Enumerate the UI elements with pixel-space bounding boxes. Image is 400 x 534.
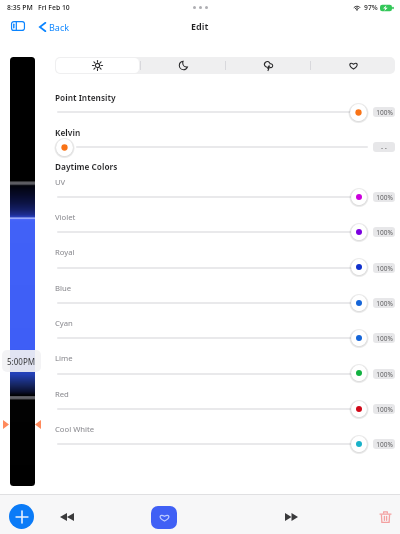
button[interactable]: Blue value [373,298,395,308]
button[interactable]: Storm [227,58,309,73]
button[interactable]: Delete [380,511,391,523]
staticText: 100% [376,405,393,414]
button[interactable]: Cool White slider [349,434,369,454]
staticText: Cyan [55,318,73,328]
button[interactable]: Daytime [56,58,139,73]
staticText: 100% [376,228,393,237]
staticText: 100% [376,334,393,343]
staticText: 100% [376,440,393,449]
staticText: Daytime Colors [55,161,118,172]
button[interactable]: Kelvin value [373,142,395,152]
staticText: 97% [364,3,378,12]
button[interactable]: Toggle sidebar [8,16,28,36]
button[interactable]: UV slider [349,187,369,207]
button[interactable]: Timeline [10,57,35,486]
button[interactable]: Fast forward [285,513,298,521]
staticText: Red [55,389,69,399]
button[interactable]: Point Intensity value [373,107,395,117]
staticText: 100% [376,370,393,379]
staticText: Violet [55,212,76,222]
staticText: Blue [55,283,72,293]
button[interactable]: Lime value [373,369,395,379]
staticText: 5:00PM [7,356,36,367]
button[interactable]: Point Intensity slider [348,102,369,123]
button[interactable]: Favorite [151,506,177,529]
button[interactable]: Night [142,58,224,73]
button[interactable]: Favorites [312,58,394,73]
staticText: Back [49,21,70,33]
staticText: Point Intensity [55,92,116,103]
button[interactable]: Violet value [373,227,395,237]
staticText: Royal [55,247,75,257]
button[interactable]: Rewind [60,513,74,521]
staticText: 100% [376,108,393,117]
button[interactable]: Cool White value [373,439,395,449]
staticText: Fri Feb 10 [38,3,70,12]
staticText: Cool White [55,424,95,434]
button[interactable]: UV value [373,192,395,202]
staticText: 100% [376,299,393,308]
button[interactable]: Kelvin slider [54,137,75,158]
button[interactable]: Add [9,504,34,529]
button[interactable]: Blue slider [349,293,369,313]
button[interactable]: Cyan slider [349,328,369,348]
staticText: 100% [376,193,393,202]
button[interactable]: Red slider [349,399,369,419]
button[interactable]: Royal slider [349,257,369,277]
staticText: Kelvin [55,127,81,138]
button[interactable]: Cyan value [373,333,395,343]
button[interactable]: Royal value [373,263,395,273]
staticText: Edit [191,20,209,32]
staticText: Lime [55,353,73,363]
staticText: - - [381,143,387,152]
button[interactable]: Lime slider [349,363,369,383]
staticText: 100% [376,264,393,273]
button[interactable]: Violet slider [349,222,369,242]
staticText: 8:35 PM [7,3,33,12]
button[interactable]: Red value [373,404,395,414]
staticText: UV [55,177,66,187]
button[interactable]: Back [36,17,73,37]
